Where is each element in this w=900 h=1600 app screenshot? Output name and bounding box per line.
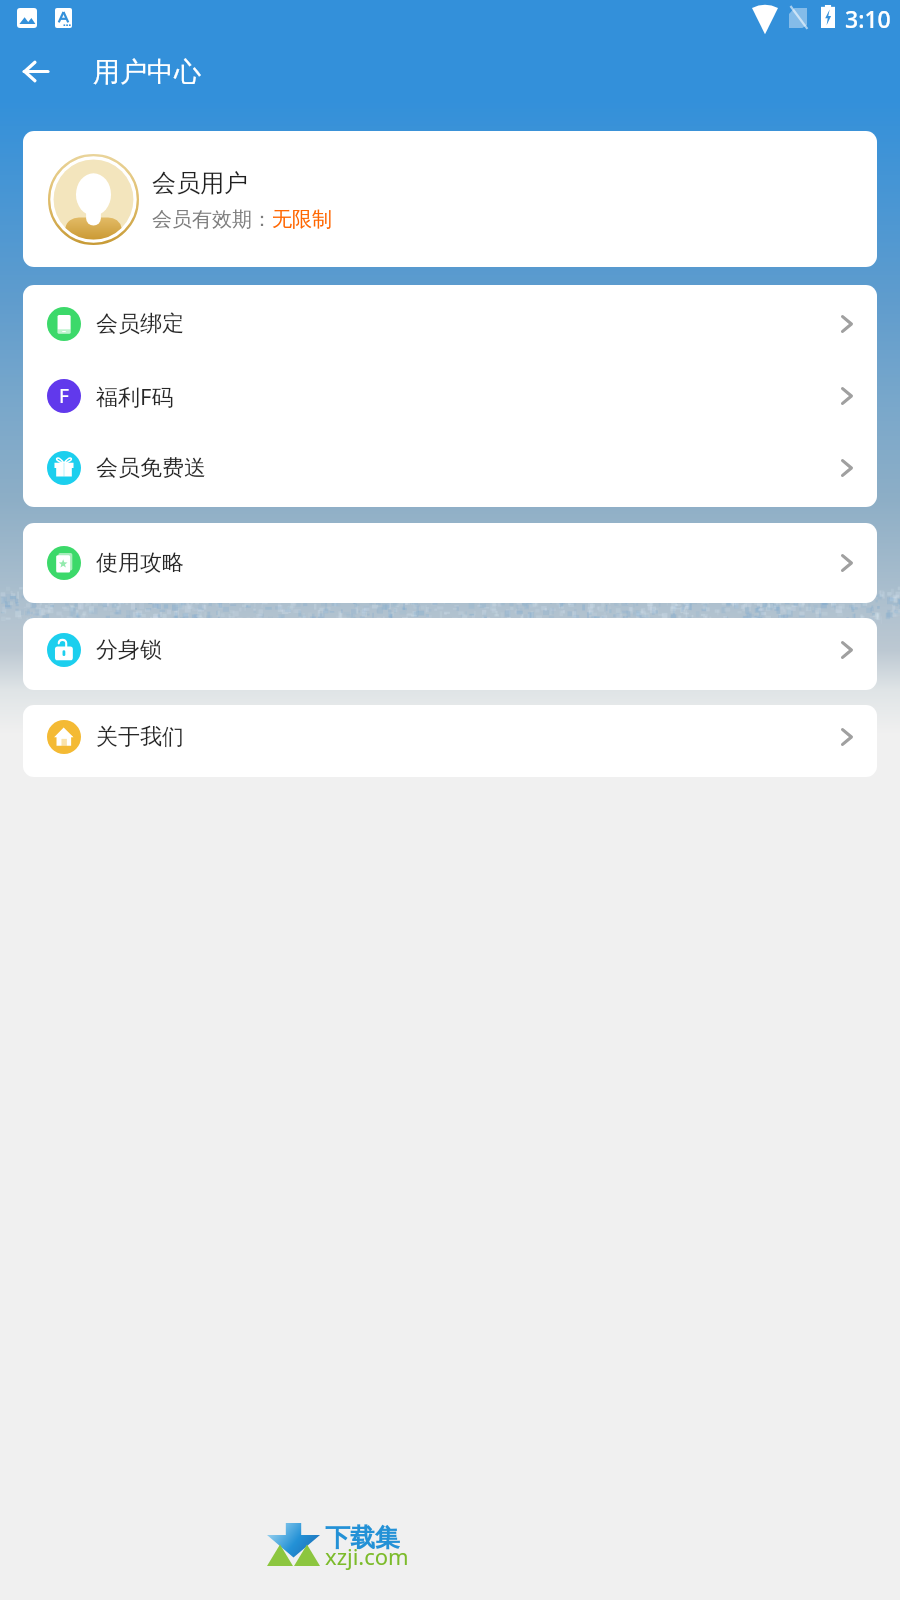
- staticText: 用户中心: [93, 55, 201, 89]
- staticText: 无限制: [272, 207, 332, 232]
- button[interactable]: Back: [5, 40, 67, 102]
- button[interactable]: 会员用户: [23, 131, 877, 267]
- staticText: F: [59, 383, 69, 409]
- staticText: 使用攻略: [96, 549, 184, 577]
- staticText: 会员绑定: [96, 310, 184, 338]
- staticText: 福利F码: [96, 381, 174, 411]
- staticText: 会员用户: [152, 168, 248, 198]
- staticText: 会员免费送: [96, 454, 206, 482]
- staticText: 关于我们: [96, 723, 184, 751]
- button[interactable]: 关于我们: [23, 705, 877, 777]
- staticText: xzji.com: [325, 1541, 409, 1571]
- staticText: 下载集: [325, 1522, 400, 1553]
- staticText: 3:10: [845, 3, 891, 34]
- staticText: 分身锁: [96, 636, 162, 664]
- button[interactable]: 会员免费送: [23, 432, 877, 504]
- button[interactable]: 分身锁: [23, 618, 877, 690]
- button[interactable]: F: [23, 360, 877, 432]
- button[interactable]: 会员绑定: [23, 288, 877, 360]
- button[interactable]: 使用攻略: [23, 523, 877, 603]
- staticText: 会员有效期：: [152, 207, 272, 232]
